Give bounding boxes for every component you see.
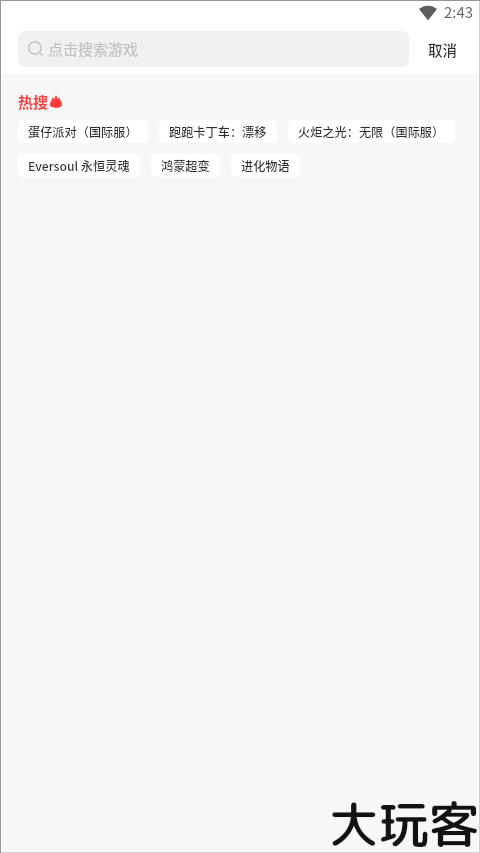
other: Search [27, 40, 45, 58]
staticText: 取消 [428, 39, 457, 60]
staticText: 2:43 [444, 1, 474, 23]
button[interactable]: 进化物语 [231, 154, 300, 177]
button[interactable]: Eversoul 永恒灵魂 [18, 154, 140, 177]
button[interactable]: 跑跑卡丁车：漂移 [159, 120, 277, 143]
staticText: 大玩客 [329, 789, 479, 853]
staticText: 火炬之光：无限（国际服） [298, 123, 445, 141]
staticText: 热搜 [18, 91, 49, 113]
staticText: 进化物语 [241, 157, 290, 175]
staticText: Eversoul 永恒灵魂 [28, 157, 130, 175]
button[interactable]: Search [18, 31, 409, 67]
button[interactable]: 蛋仔派对（国际服） [18, 120, 148, 143]
staticText: 蛋仔派对（国际服） [28, 123, 138, 141]
staticText: 点击搜索游戏 [48, 38, 139, 60]
button[interactable]: 火炬之光：无限（国际服） [288, 120, 455, 143]
staticText: 跑跑卡丁车：漂移 [169, 123, 267, 141]
button[interactable]: 取消 [409, 31, 463, 67]
button[interactable]: 鸿蒙超变 [151, 154, 220, 177]
staticText: 鸿蒙超变 [161, 157, 210, 175]
